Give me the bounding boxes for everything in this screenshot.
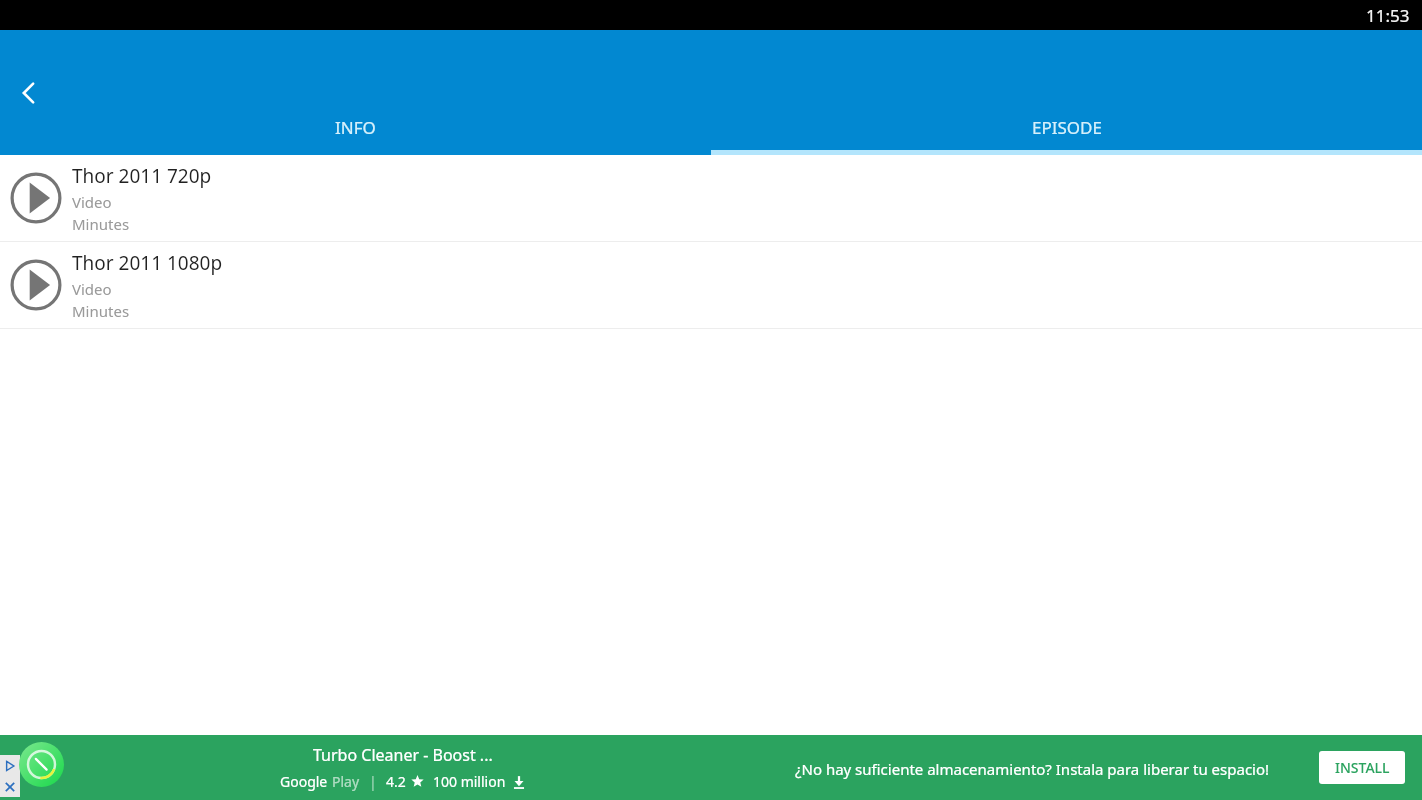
staticText: Thor 2011 720p	[72, 163, 212, 189]
staticText: Video	[72, 279, 112, 299]
button[interactable]: INSTALL	[1319, 751, 1405, 784]
staticText: 100 million	[433, 772, 506, 791]
staticText: Video	[72, 192, 112, 212]
staticText: Minutes	[72, 301, 130, 321]
button[interactable]: Thor 2011 1080p	[0, 242, 1422, 328]
button[interactable]: Ad choices	[0, 735, 1422, 800]
staticText: Turbo Cleaner - Boost ...	[313, 744, 493, 766]
button[interactable]: Thor 2011 720p	[0, 155, 1422, 241]
staticText: Play	[332, 772, 360, 791]
staticText: |	[369, 772, 377, 791]
staticText: 4.2	[386, 772, 406, 791]
staticText: Google	[280, 772, 328, 791]
button[interactable]: EPISODE	[711, 100, 1422, 155]
staticText: Thor 2011 1080p	[72, 250, 223, 276]
button[interactable]: Back	[6, 70, 52, 116]
staticText: INFO	[335, 116, 376, 139]
button[interactable]: Close ad	[0, 776, 20, 797]
button[interactable]: INFO	[0, 100, 711, 155]
button[interactable]: Ad choices	[0, 755, 20, 776]
staticText: 11:53	[1366, 4, 1410, 27]
staticText: Minutes	[72, 214, 130, 234]
staticText: INSTALL	[1335, 758, 1390, 777]
staticText: EPISODE	[1032, 116, 1102, 139]
staticText: ¿No hay suficiente almacenamiento? Insta…	[795, 759, 1270, 779]
